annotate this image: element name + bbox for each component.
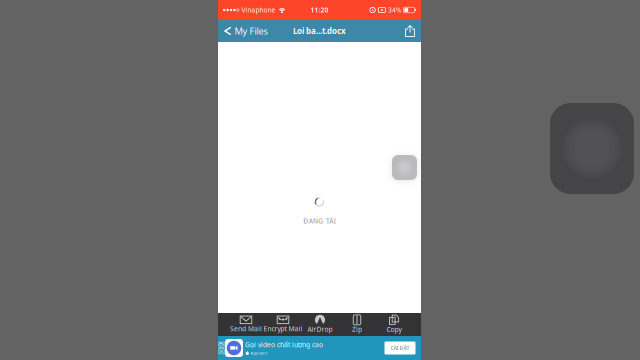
- button[interactable]: AirDrop: [301, 313, 338, 336]
- staticText: 34%: [388, 6, 402, 14]
- staticText: Loi ba...t.docx: [293, 26, 346, 36]
- staticText: My Files: [234, 25, 267, 37]
- staticText: CÀI ĐẶT: [390, 344, 409, 352]
- button[interactable]: Zip: [338, 313, 375, 336]
- staticText: Send Mail: [230, 324, 262, 333]
- staticText: Zip: [352, 325, 362, 334]
- button[interactable]: Copy: [375, 313, 412, 336]
- staticText: Copy: [386, 325, 401, 334]
- button[interactable]: Encrypt Mail: [264, 313, 301, 336]
- staticText: ĐANG TẢI: [303, 216, 336, 225]
- button[interactable]: My Files: [218, 20, 271, 42]
- staticText: Vinaphone: [241, 6, 275, 14]
- staticText: App Store: [251, 350, 268, 356]
- button[interactable]: Gọi video chất lượng cao: [218, 336, 421, 360]
- staticText: Gọi video chất lượng cao: [245, 340, 323, 349]
- staticText: Encrypt Mail: [263, 324, 302, 333]
- button[interactable]: Send Mail: [227, 313, 264, 336]
- button[interactable]: Share: [399, 20, 421, 42]
- staticText: AirDrop: [307, 325, 332, 334]
- staticText: 11:20: [310, 6, 328, 14]
